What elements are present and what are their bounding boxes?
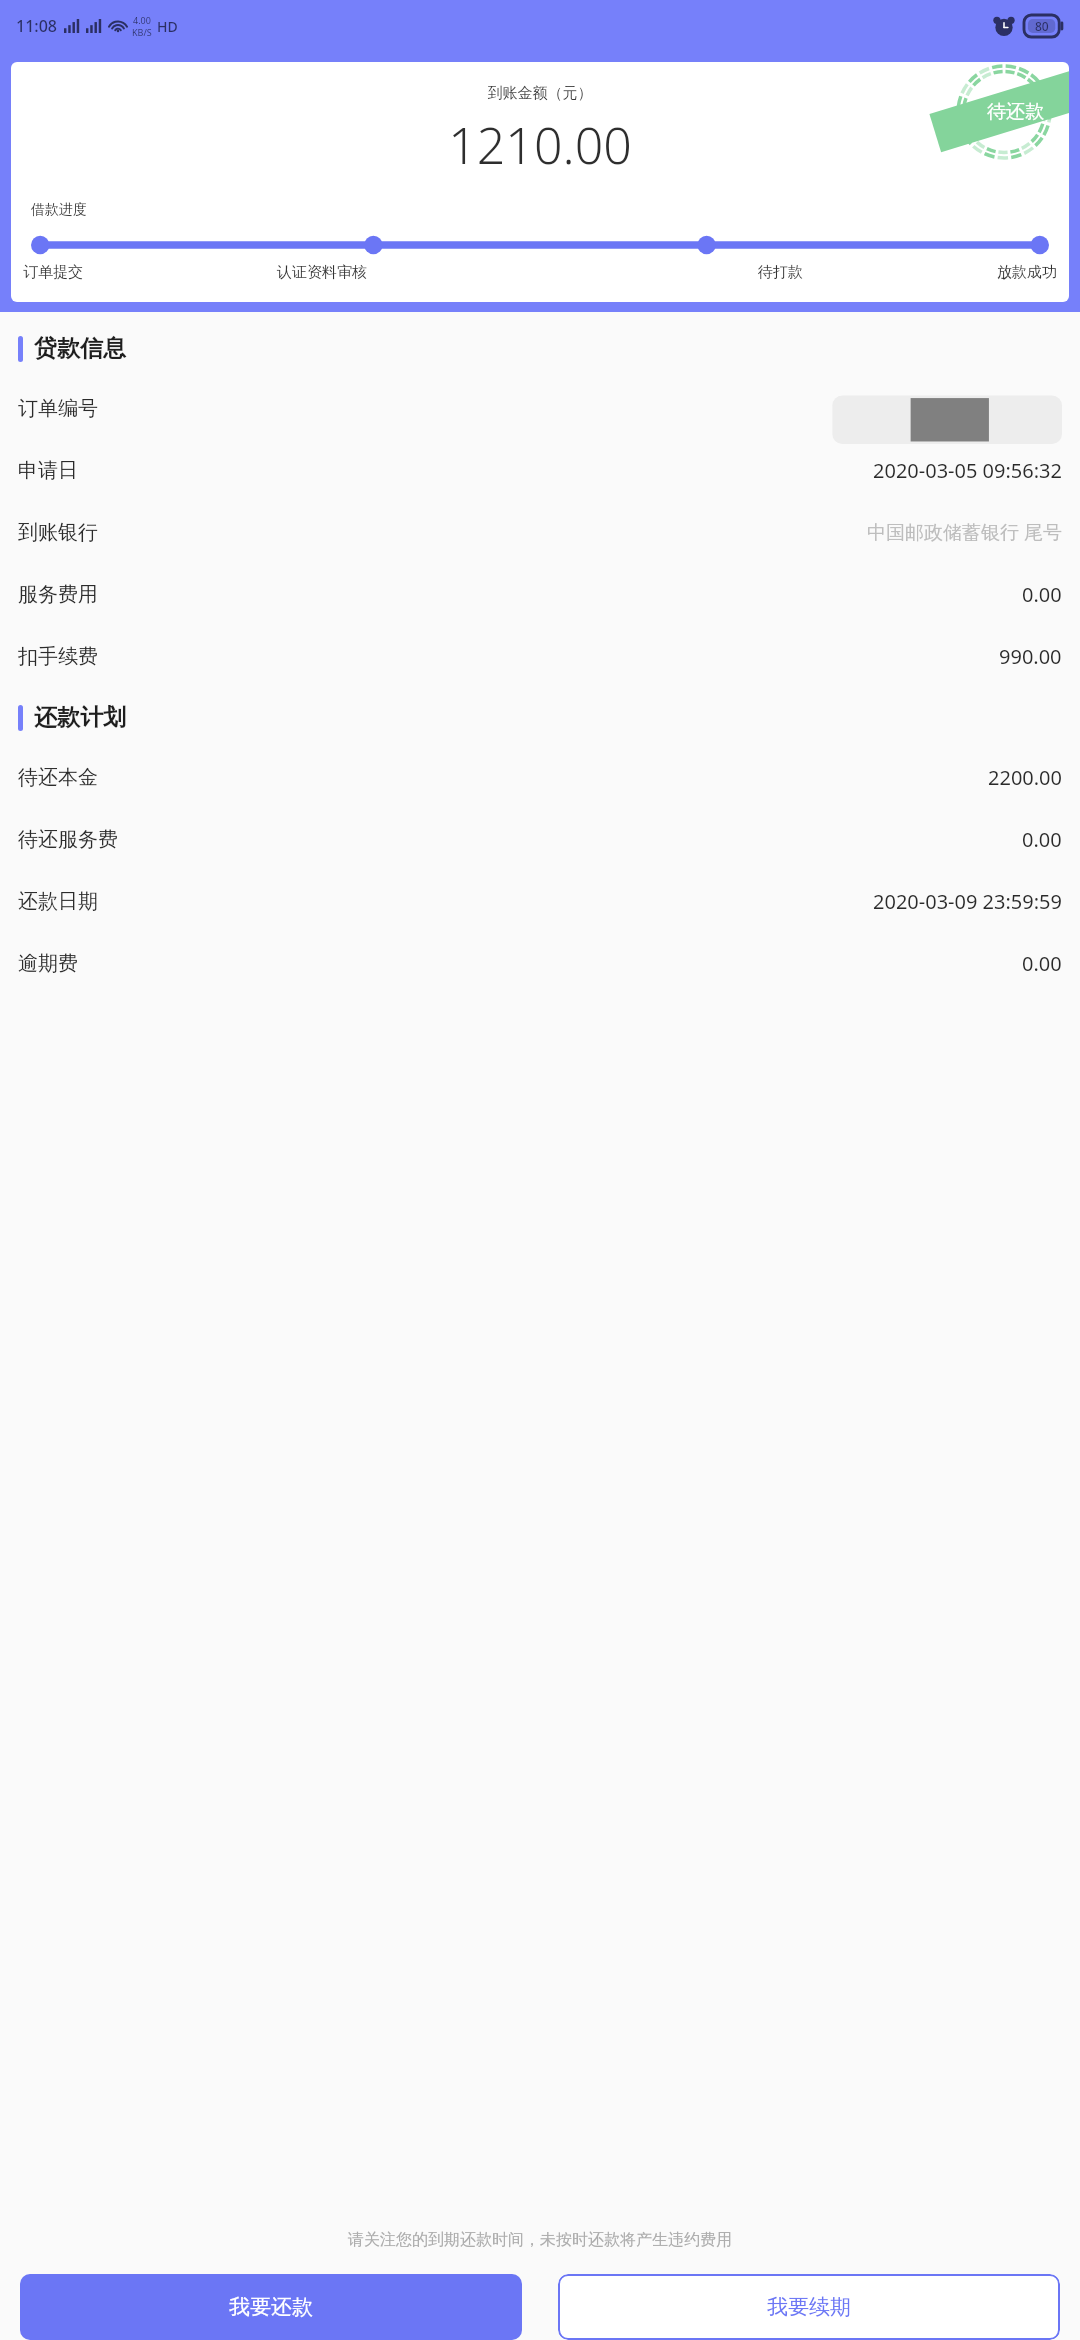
staticText: 逾期费 (18, 951, 78, 976)
staticText: 0.00 (1022, 826, 1062, 853)
staticText: 990.00 (999, 643, 1062, 670)
staticText: 服务费用 (18, 582, 98, 607)
button[interactable]: 扣手续费 (18, 625, 1062, 687)
button[interactable]: 订单编号 (18, 377, 1062, 439)
staticText: 我要还款 (229, 2294, 313, 2320)
staticText: 认证资料审核 (277, 263, 367, 282)
staticText: 订单编号 (18, 396, 98, 421)
staticText: 0.00 (1022, 950, 1062, 977)
staticText: 待还服务费 (18, 827, 118, 852)
staticText: 请关注您的到期还款时间，未按时还款将产生违约费用 (348, 2230, 732, 2250)
button[interactable]: 还款日期 (18, 870, 1062, 932)
button[interactable]: 服务费用 (18, 563, 1062, 625)
button[interactable]: 返回 (8, 60, 64, 116)
staticText: 待还款 (987, 100, 1044, 124)
staticText: 待打款 (758, 263, 803, 282)
staticText: 0.00 (1022, 581, 1062, 608)
staticText: 申请日 (18, 458, 78, 483)
staticText: HD (157, 17, 178, 36)
staticText: 11:08 (16, 15, 57, 37)
staticText: 2200.00 (988, 764, 1062, 791)
staticText: 还款计划 (34, 703, 126, 732)
staticText: 到账银行 (18, 520, 98, 545)
staticText: 到账金额（元） (11, 84, 1069, 103)
staticText: 贷款信息 (34, 334, 126, 363)
staticText: 订单详情 (494, 74, 586, 103)
staticText: 4.00 (133, 14, 151, 26)
staticText: 订单提交 (23, 263, 83, 282)
button[interactable]: 待还服务费 (18, 808, 1062, 870)
staticText: 2020-03-05 09:56:32 (873, 457, 1062, 484)
button[interactable]: 到账银行 (18, 501, 1062, 563)
button[interactable]: 待还本金 (18, 746, 1062, 808)
button[interactable]: 申请日 (18, 439, 1062, 501)
staticText: 我要续期 (767, 2294, 851, 2320)
staticText: 2020-03-09 23:59:59 (873, 888, 1062, 915)
staticText: KB/S (132, 26, 152, 38)
staticText: 借款进度 (31, 201, 87, 219)
button[interactable]: 逾期费 (18, 932, 1062, 994)
staticText: 1210.00 (11, 111, 1069, 179)
staticText: 放款成功 (997, 263, 1057, 282)
staticText: 待还本金 (18, 765, 98, 790)
staticText: 中国邮政储蓄银行 尾号 (867, 519, 1062, 545)
button[interactable]: 我要续期 (558, 2274, 1060, 2340)
staticText: 80 (1035, 18, 1049, 34)
staticText: 还款日期 (18, 889, 98, 914)
button[interactable]: 我要还款 (20, 2274, 522, 2340)
staticText: 扣手续费 (18, 644, 98, 669)
